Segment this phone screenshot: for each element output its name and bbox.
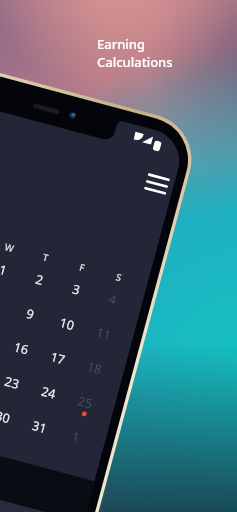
staticText: Calculations [97,53,173,71]
staticText: Earning [97,35,146,53]
